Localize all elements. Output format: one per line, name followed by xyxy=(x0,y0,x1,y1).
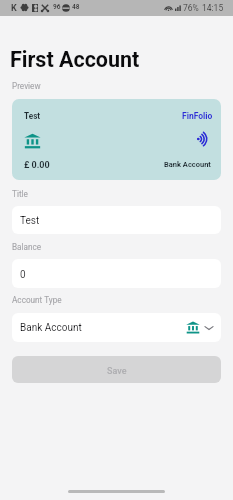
staticText: Account Type xyxy=(12,295,62,305)
staticText: Preview xyxy=(12,81,41,91)
staticText: Bank Account xyxy=(164,160,211,169)
staticText: 76% xyxy=(183,3,199,13)
staticText: £ 0.00 xyxy=(24,160,50,171)
staticText: FinFolio xyxy=(182,111,213,121)
staticText: Test xyxy=(24,111,41,121)
staticText: 14:15 xyxy=(202,3,224,13)
staticText: Balance xyxy=(12,242,42,252)
staticText: 48 xyxy=(72,3,80,11)
staticText: Save xyxy=(107,366,127,377)
staticText: Title xyxy=(12,189,28,199)
staticText: Test xyxy=(20,215,40,227)
button[interactable]: Bank Account xyxy=(12,313,221,342)
staticText: First Account xyxy=(10,47,140,72)
staticText: K xyxy=(11,3,17,14)
button[interactable]: Test xyxy=(12,99,221,180)
staticText: 96 xyxy=(53,3,61,11)
staticText: 0 xyxy=(20,269,26,281)
button[interactable]: 0 xyxy=(12,259,221,288)
staticText: Bank Account xyxy=(20,322,82,334)
other: Expand account type xyxy=(205,324,213,332)
button[interactable]: Test xyxy=(12,206,221,234)
button[interactable]: Save xyxy=(12,356,221,383)
